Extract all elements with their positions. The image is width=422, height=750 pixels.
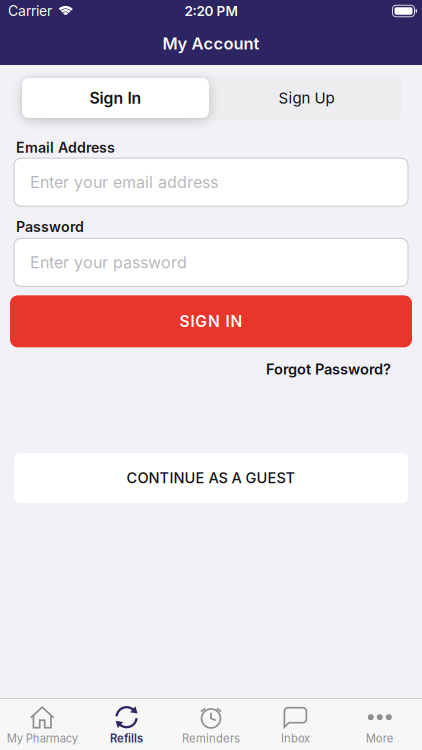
button[interactable]: Inbox bbox=[253, 705, 338, 745]
staticText: Inbox bbox=[281, 732, 310, 745]
button[interactable]: Sign Up bbox=[278, 76, 334, 120]
button[interactable]: Forgot Password? bbox=[266, 360, 391, 378]
staticText: Reminders bbox=[182, 732, 240, 745]
staticText: Enter your password bbox=[30, 253, 187, 272]
staticText: 2:20 PM bbox=[184, 3, 237, 19]
button[interactable]: More bbox=[338, 705, 422, 745]
button[interactable]: Sign In bbox=[20, 76, 211, 120]
staticText: Enter your email address bbox=[30, 172, 218, 192]
staticText: Sign Up bbox=[278, 89, 334, 107]
button[interactable]: SIGN IN bbox=[10, 295, 412, 347]
staticText: SIGN IN bbox=[180, 312, 242, 331]
button[interactable]: Reminders bbox=[169, 705, 253, 745]
button[interactable]: CONTINUE AS A GUEST bbox=[14, 453, 408, 503]
staticText: Refills bbox=[110, 732, 143, 745]
staticText: My Pharmacy bbox=[7, 732, 78, 745]
staticText: Password bbox=[16, 218, 84, 235]
staticText: Sign In bbox=[89, 88, 141, 108]
staticText: CONTINUE AS A GUEST bbox=[126, 469, 295, 487]
staticText: Email Address bbox=[16, 139, 115, 156]
staticText: My Account bbox=[162, 33, 259, 53]
staticText: Forgot Password? bbox=[266, 360, 391, 378]
button[interactable]: Refills bbox=[84, 705, 169, 745]
staticText: Carrier bbox=[8, 2, 52, 19]
staticText: More bbox=[366, 732, 394, 745]
button[interactable]: My Pharmacy bbox=[0, 705, 84, 745]
